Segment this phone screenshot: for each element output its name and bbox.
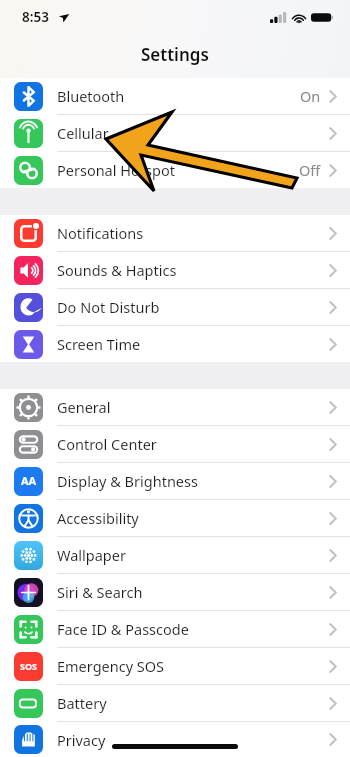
button[interactable]: Do Not Disturb <box>0 289 350 325</box>
staticText: General <box>57 397 111 417</box>
button[interactable]: Battery <box>0 685 350 721</box>
staticText: Settings <box>141 43 209 66</box>
button[interactable]: SOS <box>0 648 350 684</box>
staticText: Display & Brightness <box>57 471 198 491</box>
staticText: 8:53 <box>22 8 49 26</box>
staticText: Battery <box>57 693 107 713</box>
staticText: Accessibility <box>57 508 139 528</box>
button[interactable]: Face ID & Passcode <box>0 611 350 647</box>
staticText: AA <box>14 473 43 496</box>
button[interactable]: Screen Time <box>0 326 350 362</box>
staticText: Notifications <box>57 223 144 243</box>
staticText: Off <box>299 160 321 180</box>
button[interactable]: Sounds & Haptics <box>0 252 350 288</box>
button[interactable]: Siri & Search <box>0 574 350 610</box>
staticText: Face ID & Passcode <box>57 619 189 639</box>
staticText: Emergency SOS <box>57 656 165 676</box>
staticText: Sounds & Haptics <box>57 260 177 280</box>
staticText: Wallpaper <box>57 545 126 565</box>
button[interactable]: Bluetooth <box>0 78 350 114</box>
staticText: Bluetooth <box>57 86 125 106</box>
button[interactable]: Wallpaper <box>0 537 350 573</box>
staticText: Siri & Search <box>57 582 143 602</box>
button[interactable]: Accessibility <box>0 500 350 536</box>
staticText: Personal Hotspot <box>57 160 175 180</box>
staticText: Cellular <box>57 123 109 143</box>
staticText: Privacy <box>57 730 106 750</box>
button[interactable]: General <box>0 389 350 425</box>
staticText: SOS <box>14 660 43 681</box>
button[interactable]: Control Center <box>0 426 350 462</box>
staticText: Do Not Disturb <box>57 297 160 317</box>
button[interactable]: Personal Hotspot <box>0 152 350 188</box>
staticText: Screen Time <box>57 334 141 354</box>
button[interactable]: Privacy <box>0 722 350 757</box>
staticText: On <box>300 86 321 106</box>
button[interactable]: Cellular <box>0 115 350 151</box>
button[interactable]: AA <box>0 463 350 499</box>
staticText: Control Center <box>57 434 157 454</box>
button[interactable]: Notifications <box>0 215 350 251</box>
